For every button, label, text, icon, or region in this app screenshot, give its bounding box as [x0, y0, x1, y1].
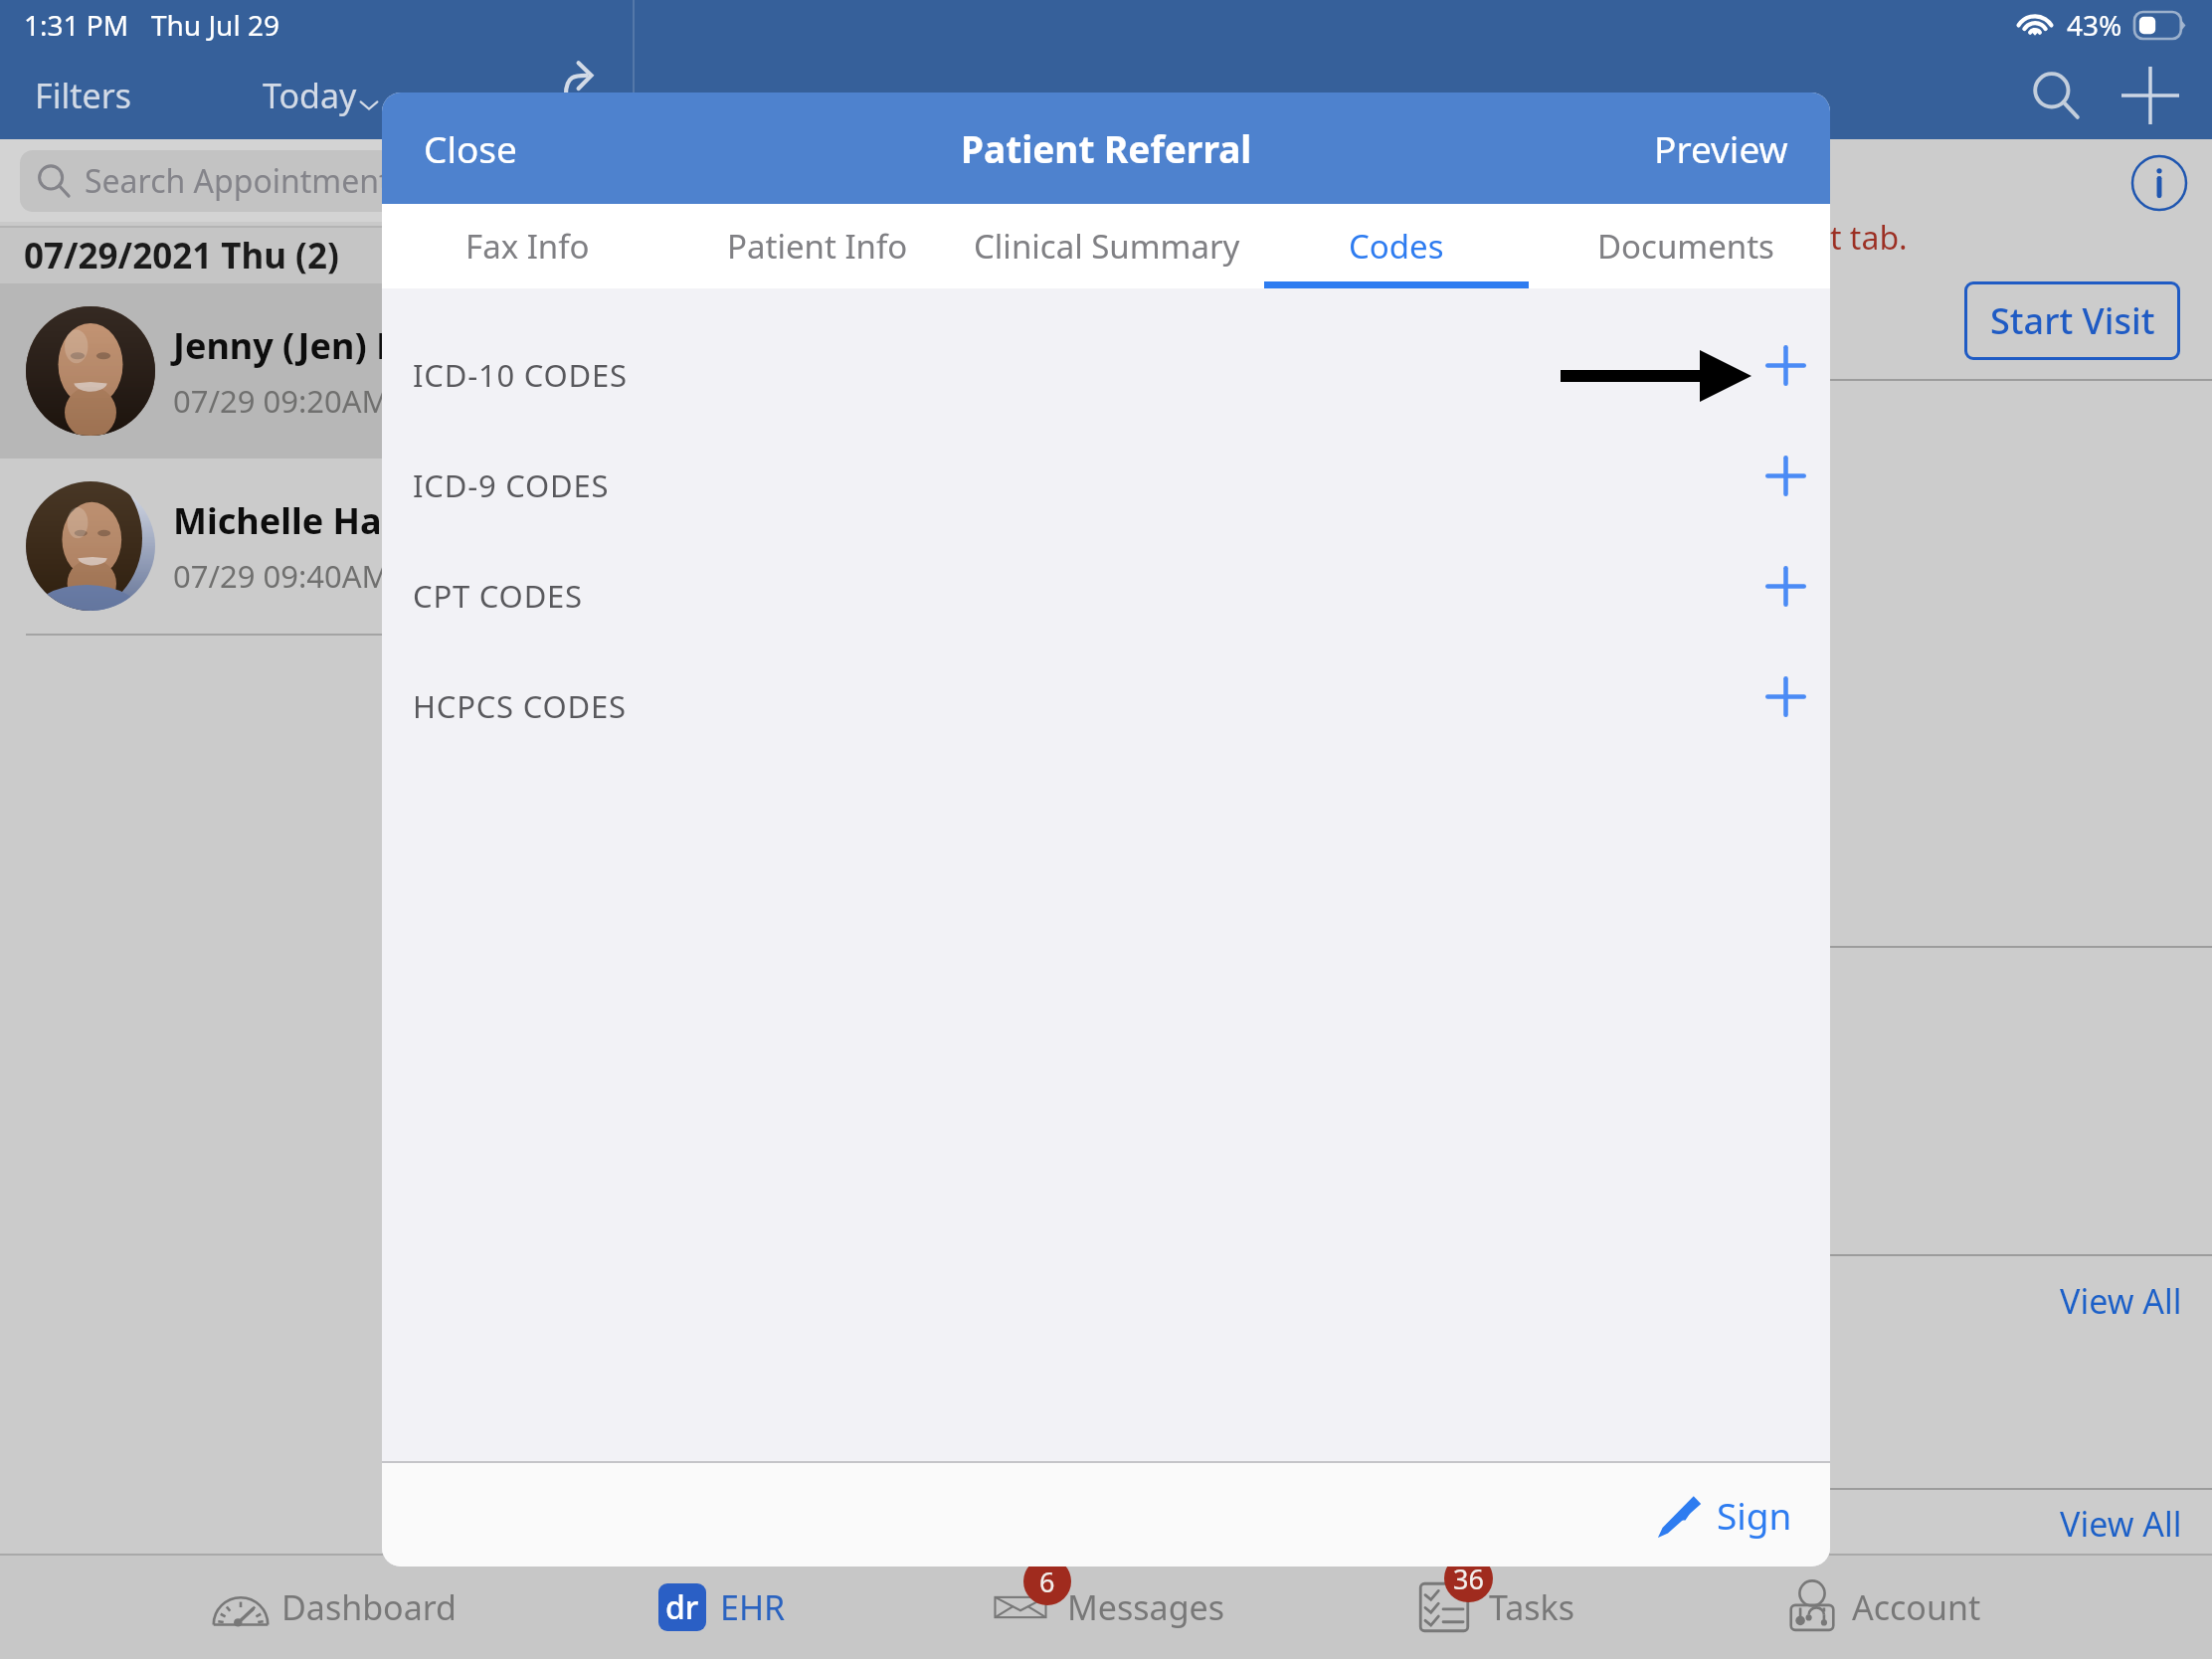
staticText: Codes [1349, 224, 1444, 269]
staticText: HCPCS CODES [413, 685, 627, 727]
staticText: Close [424, 123, 517, 173]
button[interactable]: CPT CODES [382, 540, 1830, 650]
staticText: 07/29/2021 Thu (2) [24, 232, 339, 279]
staticText: Patient Info [727, 224, 908, 269]
button[interactable]: Info [2128, 152, 2190, 214]
button[interactable]: ICD-9 CODES [382, 430, 1830, 540]
staticText: 1:31 PM [24, 6, 129, 44]
staticText: 43% [2067, 6, 2122, 44]
staticText: Start Visit [1990, 296, 2155, 345]
button[interactable]: Dashboard [141, 1556, 528, 1659]
staticText: t tab. [1830, 216, 1908, 260]
button[interactable]: Today [249, 55, 393, 136]
staticText: Jenny (Jen) Ha [173, 321, 426, 370]
staticText: CPT CODES [413, 575, 583, 617]
button[interactable]: Patient Info [672, 204, 962, 288]
button[interactable]: Search [2010, 52, 2102, 139]
button[interactable]: Share [533, 34, 623, 121]
button[interactable]: Michelle Harris [0, 459, 633, 636]
button[interactable]: Search Appointments [20, 150, 613, 212]
staticText: Search Appointments [85, 159, 406, 203]
button[interactable]: View All [2050, 1268, 2192, 1334]
button[interactable]: Account [1689, 1556, 2076, 1659]
staticText: 6 [1039, 1564, 1055, 1600]
staticText: Today [263, 73, 357, 118]
staticText: Tasks [1489, 1584, 1574, 1630]
button[interactable]: dr [528, 1556, 915, 1659]
staticText: 07/29 09:20AM [173, 380, 390, 422]
button[interactable]: Add [2105, 52, 2196, 139]
button[interactable]: HCPCS CODES [382, 650, 1830, 761]
staticText: Thu Jul 29 [151, 6, 279, 44]
button[interactable]: Preview [1612, 101, 1830, 195]
staticText: ICD-9 CODES [413, 464, 610, 506]
staticText: Sign [1717, 1490, 1792, 1540]
button[interactable]: Start Visit [1964, 281, 2180, 360]
staticText: View All [2060, 1278, 2182, 1324]
button[interactable]: 6 [915, 1556, 1302, 1659]
button[interactable]: Filters [17, 55, 149, 136]
button[interactable]: Documents [1541, 204, 1830, 288]
staticText: Preview [1654, 123, 1788, 173]
staticText: Documents [1597, 224, 1774, 269]
staticText: Fax Info [465, 224, 590, 269]
button[interactable]: ICD-10 CODES [382, 319, 1830, 430]
staticText: 07/29 09:40AM [173, 555, 390, 597]
button[interactable]: Codes [1251, 204, 1541, 288]
button[interactable]: 36 [1302, 1556, 1689, 1659]
staticText: Clinical Summary [974, 224, 1240, 269]
button[interactable]: Clinical Summary [962, 204, 1251, 288]
button[interactable]: Fax Info [382, 204, 672, 288]
staticText: EHR [720, 1584, 786, 1630]
staticText: dr [665, 1585, 699, 1629]
button[interactable]: View All [2050, 1491, 2192, 1556]
button[interactable]: Close [382, 101, 559, 195]
button[interactable]: Sign [1619, 1472, 1830, 1558]
staticText: ICD-10 CODES [413, 354, 628, 396]
button[interactable]: Jenny (Jen) Ha [0, 283, 633, 459]
staticText: View All [2060, 1501, 2182, 1546]
staticText: 36 [1453, 1561, 1484, 1597]
staticText: Dashboard [281, 1584, 458, 1630]
staticText: Patient Referral [961, 123, 1252, 173]
staticText: Messages [1067, 1584, 1225, 1630]
staticText: Filters [35, 73, 131, 118]
staticText: Michelle Harris [173, 496, 443, 545]
staticText: Account [1852, 1584, 1981, 1630]
